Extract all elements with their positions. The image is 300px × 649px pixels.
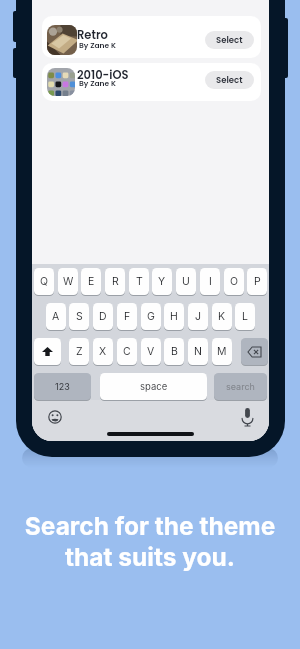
staticText: A <box>52 310 60 323</box>
button[interactable]: O <box>224 268 244 295</box>
button[interactable]: T <box>129 268 149 295</box>
staticText: By Zane K <box>79 40 116 50</box>
button[interactable] <box>239 407 256 427</box>
button[interactable]: 123 <box>34 373 91 400</box>
button[interactable]: Select <box>205 31 254 49</box>
button[interactable]: Select <box>205 71 254 89</box>
button[interactable] <box>34 338 61 365</box>
staticText: U <box>182 275 190 288</box>
button[interactable]: Y <box>152 268 172 295</box>
button[interactable]: F <box>117 303 137 330</box>
button[interactable]: V <box>141 338 161 365</box>
button[interactable]: H <box>164 303 184 330</box>
button[interactable]: E <box>81 268 101 295</box>
staticText: I <box>209 275 212 288</box>
button[interactable]: X <box>93 338 113 365</box>
staticText: H <box>170 310 178 323</box>
staticText: B <box>171 345 178 358</box>
button[interactable]: P <box>247 268 267 295</box>
staticText: 123 <box>55 381 70 392</box>
staticText: R <box>112 275 119 288</box>
button[interactable]: U <box>176 268 196 295</box>
staticText: K <box>218 310 226 323</box>
button[interactable]: I <box>200 268 220 295</box>
button[interactable]: G <box>141 303 161 330</box>
button[interactable]: space <box>100 373 207 400</box>
button[interactable]: K <box>212 303 232 330</box>
button[interactable]: Retro <box>42 16 261 58</box>
staticText: 2010-iOS <box>77 67 129 83</box>
button[interactable]: J <box>188 303 208 330</box>
button[interactable]: B <box>164 338 184 365</box>
staticText: Q <box>40 275 49 288</box>
staticText: space <box>140 381 168 392</box>
button[interactable]: A <box>46 303 66 330</box>
staticText: N <box>194 345 202 358</box>
staticText: Select <box>216 34 243 46</box>
button[interactable]: M <box>212 338 232 365</box>
button[interactable]: 2010-iOS <box>42 63 261 101</box>
staticText: W <box>63 275 74 288</box>
button[interactable]: W <box>58 268 78 295</box>
button[interactable]: Q <box>34 268 54 295</box>
staticText: Search for the theme that suits you. <box>0 511 300 572</box>
staticText: O <box>230 275 239 288</box>
button[interactable]: N <box>188 338 208 365</box>
staticText: Select <box>216 74 243 86</box>
button[interactable]: D <box>93 303 113 330</box>
staticText: E <box>88 275 95 288</box>
button[interactable]: Z <box>69 338 89 365</box>
staticText: P <box>254 275 261 288</box>
button[interactable]: S <box>69 303 89 330</box>
staticText: By Zane K <box>79 78 116 88</box>
staticText: D <box>99 310 107 323</box>
staticText: L <box>242 310 248 323</box>
staticText: Z <box>76 345 83 358</box>
staticText: T <box>136 275 143 288</box>
button[interactable]: search <box>214 373 267 400</box>
button[interactable] <box>47 409 63 425</box>
staticText: J <box>195 310 201 323</box>
button[interactable]: C <box>117 338 137 365</box>
staticText: V <box>147 345 155 358</box>
staticText: search <box>226 381 255 392</box>
button[interactable]: L <box>235 303 255 330</box>
button[interactable]: R <box>105 268 125 295</box>
staticText: Retro <box>77 27 108 43</box>
staticText: F <box>124 310 131 323</box>
staticText: G <box>147 310 155 323</box>
staticText: M <box>217 345 227 358</box>
staticText: S <box>76 310 83 323</box>
button[interactable] <box>241 338 268 365</box>
staticText: Y <box>158 275 166 288</box>
staticText: C <box>123 345 131 358</box>
staticText: X <box>99 345 107 358</box>
